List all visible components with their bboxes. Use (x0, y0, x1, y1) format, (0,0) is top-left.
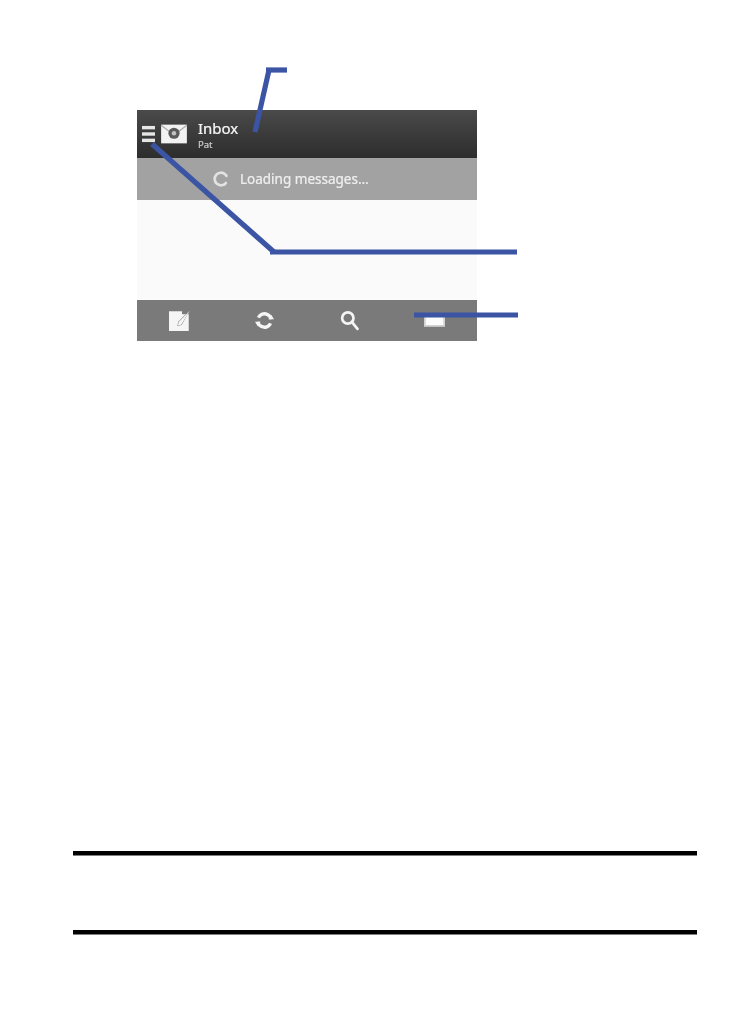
button[interactable]: More options (392, 300, 477, 341)
staticText: Loading messages… (240, 170, 369, 188)
button[interactable]: Inbox (198, 110, 477, 158)
staticText: Pat (198, 138, 213, 151)
button[interactable]: Compose (137, 300, 222, 341)
button[interactable]: Loading messages… (137, 158, 477, 200)
button[interactable]: Open navigation drawer (137, 110, 191, 158)
staticText: Inbox (198, 118, 239, 138)
button[interactable]: Refresh (222, 300, 307, 341)
button[interactable]: Search (307, 300, 392, 341)
